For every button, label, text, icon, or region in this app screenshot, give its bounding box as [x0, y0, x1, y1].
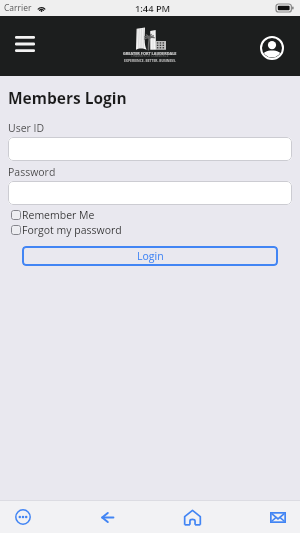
staticText: Password	[8, 165, 56, 179]
staticText: EXPERIENCE. BETTER. BUSINESS.	[124, 58, 176, 62]
staticText: GREATER FORT LAUDERDALE	[123, 51, 177, 56]
button[interactable]: Back	[87, 501, 128, 533]
staticText: Remember Me	[22, 208, 95, 222]
button[interactable]: Home	[172, 501, 213, 533]
button[interactable]: Open navigation menu	[5, 33, 45, 54]
button[interactable]: Mail	[257, 501, 298, 533]
staticText: User ID	[8, 121, 45, 135]
staticText: Carrier	[4, 2, 32, 14]
staticText: Members Login	[8, 87, 127, 108]
button[interactable]	[8, 137, 292, 161]
staticText: Login	[137, 249, 164, 263]
button[interactable]: Login	[22, 246, 278, 266]
button[interactable]: Account	[259, 35, 285, 61]
button[interactable]: More options	[2, 501, 43, 533]
staticText: 1:44 PM	[135, 2, 171, 15]
staticText: Forgot my password	[22, 223, 122, 237]
button[interactable]: Remember Me	[11, 208, 95, 222]
staticText: CHAMBER OF COMMERCE	[131, 54, 169, 58]
button[interactable]: Forgot my password	[11, 223, 122, 237]
button[interactable]	[8, 181, 292, 205]
